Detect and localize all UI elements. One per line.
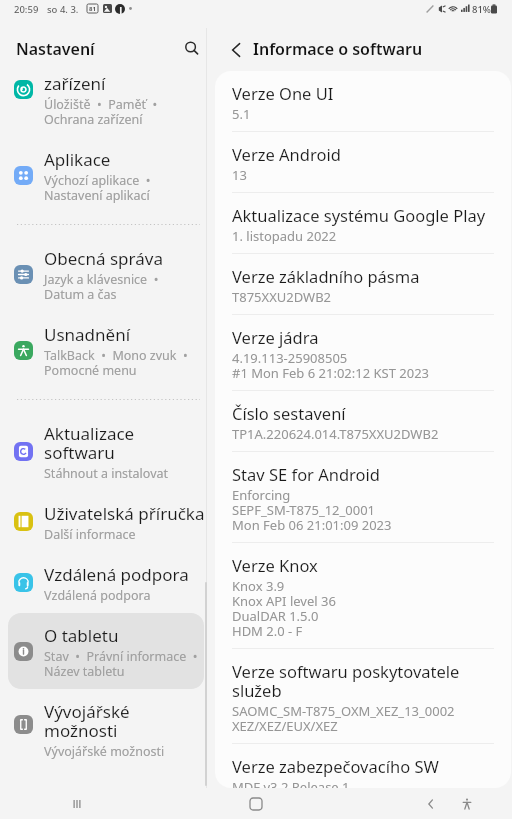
button[interactable]: Verze základního pásma [215,254,511,314]
button[interactable]: Uživatelská příručka [8,491,204,552]
button[interactable]: O tabletu [8,613,204,689]
staticText: Ochrana zařízení [44,111,143,128]
staticText: Aplikace [44,148,111,171]
staticText: Stav SE for Android [232,463,380,485]
button[interactable]: Verze Knox [215,543,511,648]
staticText: Vzdálená podpora [44,563,189,586]
button[interactable]: Home [241,789,271,819]
button[interactable]: Back [416,789,446,819]
staticText: Obecná správa [44,247,163,270]
staticText: DualDAR 1.5.0 [232,607,319,625]
staticText: Vzdálená podpora [44,587,151,604]
staticText: 81% [472,3,491,16]
staticText: O tabletu [44,624,119,647]
staticText: TalkBack • Mono zvuk • [44,347,188,364]
button[interactable]: Verze jádra [215,315,511,390]
button[interactable]: Search [177,35,207,65]
staticText: MDF v3.2 Release 1 [232,778,350,788]
staticText: Verze Android [232,143,341,165]
staticText: Verze zabezpečovacího SW [232,755,439,777]
button[interactable]: Verze Android [215,132,511,192]
button[interactable]: Aktualizace systému Google Play [215,193,511,253]
staticText: Číslo sestavení [232,402,346,424]
staticText: SEPF_SM-T875_12_0001 [232,501,376,519]
staticText: XEZ/XEZ/EUX/XEZ [232,717,338,735]
staticText: Další informace [44,526,136,543]
staticText: Pomocné menu [44,362,137,379]
staticText: Mon Feb 06 21:01:09 2023 [232,516,392,534]
button[interactable]: Obecná správa [8,236,204,312]
staticText: 81 [89,5,96,13]
staticText: softwaru [44,441,115,464]
staticText: 13 [232,166,247,184]
staticText: Úložiště • Paměť • [44,96,158,113]
staticText: Enforcing [232,486,291,504]
staticText: Vývojářské [44,700,130,723]
staticText: TP1A.220624.014.T875XXU2DWB2 [232,425,439,443]
staticText: #1 Mon Feb 6 21:02:12 KST 2023 [232,364,430,382]
staticText: Aktualizace systému Google Play [232,204,486,226]
staticText: Název tabletu [44,663,125,680]
staticText: so 4. 3. [47,3,79,16]
button[interactable]: Verze One UI [215,71,511,131]
staticText: Uživatelská příručka [44,502,204,525]
staticText: Vývojářské možnosti [44,743,165,759]
button[interactable]: Usnadnění [8,312,204,388]
staticText: zařízení [44,72,106,95]
staticText: Výchozí aplikace • [44,172,151,189]
staticText: 20:59 [14,3,39,16]
staticText: Verze základního pásma [232,265,420,287]
staticText: 4.19.113-25908505 [232,349,348,367]
staticText: 1. listopadu 2022 [232,227,337,245]
staticText: Verze softwaru poskytovatele [232,660,460,682]
staticText: T875XXU2DWB2 [232,288,332,306]
staticText: Aktualizace [44,422,135,445]
staticText: Datum a čas [44,286,117,303]
staticText: Stáhnout a instalovat [44,465,169,482]
button[interactable]: Aktualizace [8,411,204,491]
button[interactable]: Back [221,35,251,65]
button[interactable]: Stav SE for Android [215,452,511,542]
staticText: Nastavení aplikací [44,187,150,204]
button[interactable]: Verze zabezpečovacího SW [215,744,511,788]
button[interactable]: Recents [62,789,92,819]
staticText: Knox API level 36 [232,592,336,610]
button[interactable]: Péče o [8,71,204,137]
button[interactable]: Vzdálená podpora [8,552,204,613]
button[interactable]: Aplikace [8,137,204,213]
button[interactable]: Vývojářské [8,689,204,759]
staticText: HDM 2.0 - F [232,622,303,640]
staticText: Verze Knox [232,554,318,576]
staticText: Nastavení [16,38,95,60]
staticText: Informace o softwaru [253,38,423,60]
staticText: Knox 3.9 [232,577,285,595]
button[interactable]: Accessibility [452,789,482,819]
staticText: Verze jádra [232,326,319,348]
staticText: Jazyk a klávesnice • [44,271,159,288]
staticText: 5.1 [232,105,251,123]
staticText: Stav • Právní informace • [44,648,198,665]
staticText: Verze One UI [232,82,334,104]
staticText: možnosti [44,719,118,742]
staticText: SAOMC_SM-T875_OXM_XEZ_13_0002 [232,702,455,720]
staticText: Usnadnění [44,323,131,346]
staticText: služeb [232,679,282,701]
button[interactable]: Verze softwaru poskytovatele [215,649,511,743]
button[interactable]: Číslo sestavení [215,391,511,451]
